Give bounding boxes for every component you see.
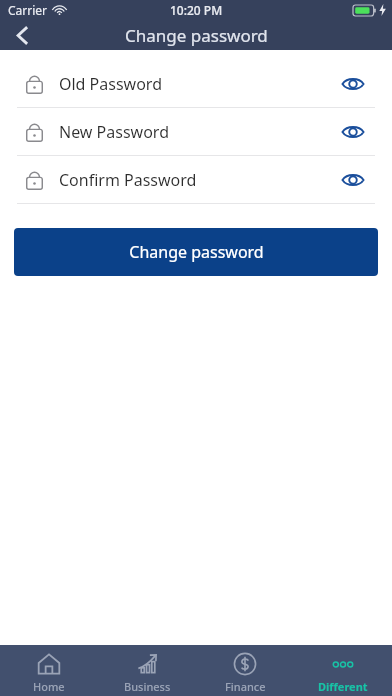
button[interactable]: New Password	[0, 108, 392, 156]
staticText: Change password	[125, 24, 268, 47]
button[interactable]: Show password	[336, 67, 370, 101]
staticText: Confirm Password	[59, 169, 197, 191]
staticText: 10:20 PM	[170, 2, 223, 18]
button[interactable]: Different	[294, 645, 392, 696]
staticText: Home	[33, 679, 65, 694]
button[interactable]: Back	[0, 20, 44, 50]
staticText: New Password	[59, 121, 169, 143]
button[interactable]: Home	[0, 645, 98, 696]
staticText: Finance	[225, 679, 266, 694]
staticText: Business	[124, 679, 171, 694]
staticText: Change password	[129, 241, 264, 263]
button[interactable]: Business	[98, 645, 196, 696]
staticText: Old Password	[59, 73, 162, 95]
button[interactable]: Change password	[14, 228, 378, 276]
button[interactable]: Finance	[196, 645, 294, 696]
staticText: Different	[318, 679, 368, 694]
button[interactable]: Old Password	[0, 60, 392, 108]
button[interactable]: Show password	[336, 115, 370, 149]
button[interactable]: Show password	[336, 163, 370, 197]
staticText: Carrier	[8, 2, 48, 18]
button[interactable]: Confirm Password	[0, 156, 392, 204]
